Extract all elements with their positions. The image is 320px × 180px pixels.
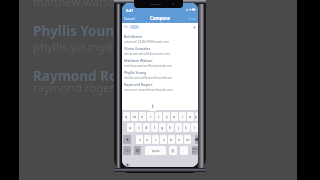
staticText: a: [129, 125, 132, 130]
button[interactable]: l: [191, 123, 198, 132]
staticText: e: [141, 114, 144, 119]
staticText: o: [189, 114, 192, 119]
button[interactable]: b: [168, 135, 175, 144]
staticText: Phyllis Young: [33, 22, 123, 40]
button[interactable]: x: [144, 135, 151, 144]
button[interactable]: c: [152, 135, 159, 144]
button[interactable]: @: [169, 146, 177, 155]
button[interactable]: h: [167, 123, 174, 132]
staticText: phyllis.young@butterflyworld.com: [124, 76, 173, 79]
button[interactable]: Matthew Watson: [122, 55, 198, 67]
staticText: t: [158, 114, 160, 119]
staticText: Compose: [150, 15, 171, 21]
button[interactable]: Gloria Gonzalez: [122, 43, 198, 55]
staticText: g: [161, 125, 164, 130]
button[interactable]: g: [159, 123, 166, 132]
staticText: Gloria Gonzalez: [124, 46, 151, 51]
button[interactable]: n: [176, 135, 183, 144]
button[interactable]: p: [195, 112, 198, 121]
staticText: Phyllis Young: [124, 70, 147, 75]
button[interactable]: i: [179, 112, 186, 121]
button[interactable]: Bob Bester: [122, 31, 198, 43]
staticText: l: [194, 125, 195, 130]
button[interactable]: 123: [123, 146, 131, 155]
staticText: .: [183, 148, 185, 153]
button[interactable]: r: [147, 112, 154, 121]
staticText: y: [166, 114, 168, 119]
button[interactable]: w: [131, 112, 138, 121]
staticText: m: [186, 137, 190, 142]
staticText: p: [195, 114, 198, 119]
button[interactable]: Send: [188, 16, 196, 21]
button[interactable]: space: [145, 146, 166, 155]
staticText: j: [178, 125, 179, 130]
staticText: v: [163, 137, 165, 142]
staticText: gloria.gonzalez@lillysummit.com: [124, 52, 171, 55]
button[interactable]: Emoji: [134, 146, 141, 155]
button[interactable]: d: [143, 123, 150, 132]
button[interactable]: Phyllis Young: [122, 67, 198, 79]
staticText: u: [173, 114, 176, 119]
staticText: t: [152, 103, 154, 110]
staticText: phyllis.young@b: [33, 39, 123, 55]
staticText: To:: [124, 25, 129, 29]
staticText: k: [185, 125, 188, 130]
button[interactable]: Raymond Rogers: [122, 79, 198, 91]
staticText: space: [152, 149, 160, 153]
staticText: Bob Bester: [124, 34, 143, 39]
button[interactable]: k: [183, 123, 190, 132]
staticText: f: [154, 125, 156, 130]
staticText: b: [170, 137, 173, 142]
button[interactable]: Add contact: [193, 26, 196, 29]
button[interactable]: m: [184, 135, 191, 144]
staticText: raymond_rogers@northsouth.com: [124, 88, 173, 91]
button[interactable]: [130, 25, 139, 29]
staticText: raymond.rogers: [33, 80, 121, 96]
staticText: w: [133, 114, 136, 119]
button[interactable]: e: [139, 112, 146, 121]
staticText: Raymond Rogers: [124, 82, 153, 87]
staticText: @: [171, 148, 175, 153]
staticText: Matthew Watson: [124, 58, 153, 63]
button[interactable]: Cancel: [124, 16, 135, 21]
staticText: i: [182, 114, 183, 119]
button[interactable]: t: [155, 112, 162, 121]
button[interactable]: Dictate: [125, 163, 130, 167]
button[interactable]: q: [123, 112, 130, 121]
staticText: x: [146, 137, 149, 142]
staticText: c: [155, 137, 157, 142]
button[interactable]: .: [180, 146, 188, 155]
staticText: h: [169, 125, 172, 130]
button[interactable]: return: [192, 146, 198, 155]
staticText: automat123456789@gmail.com: [124, 40, 169, 43]
staticText: q: [125, 114, 128, 119]
staticText: z: [139, 137, 141, 142]
staticText: 9:41: [126, 8, 134, 13]
staticText: 123: [125, 149, 130, 153]
button[interactable]: s: [135, 123, 142, 132]
staticText: return: [192, 147, 198, 154]
button[interactable]: z: [136, 135, 143, 144]
staticText: matthew.watson: [33, 0, 123, 10]
button[interactable]: u: [171, 112, 178, 121]
staticText: matthew.watson@batemanbr.com: [124, 64, 173, 67]
button[interactable]: v: [160, 135, 167, 144]
staticText: s: [138, 125, 140, 130]
button[interactable]: y: [163, 112, 170, 121]
button[interactable]: o: [187, 112, 194, 121]
staticText: d: [145, 125, 148, 130]
staticText: r: [150, 114, 152, 119]
button[interactable]: Backspace: [195, 135, 198, 144]
staticText: n: [178, 137, 181, 142]
staticText: bob.bester@mail.com: [146, 22, 175, 26]
button[interactable]: j: [175, 123, 182, 132]
button[interactable]: a: [127, 123, 134, 132]
button[interactable]: f: [151, 123, 158, 132]
button[interactable]: Shift: [123, 135, 131, 144]
staticText: Raymond Rogers: [33, 67, 147, 85]
